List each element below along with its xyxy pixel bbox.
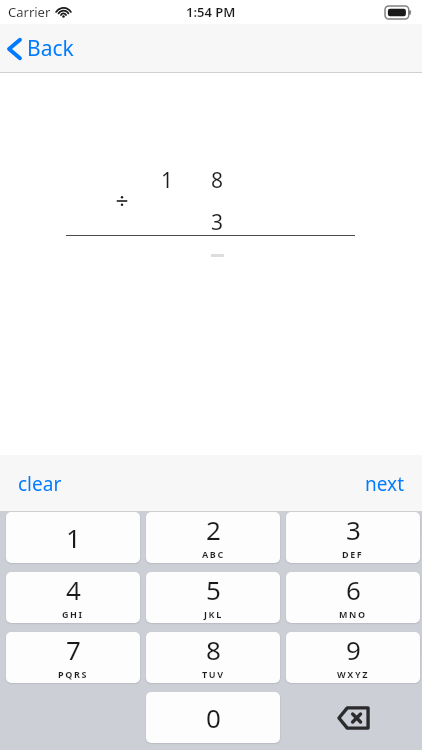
staticText: 8 xyxy=(206,632,221,667)
staticText: WXYZ xyxy=(337,668,369,680)
staticText: 8 xyxy=(207,166,227,195)
staticText: 0 xyxy=(206,700,221,735)
staticText: 6 xyxy=(346,572,361,607)
staticText: MNO xyxy=(339,608,367,620)
button[interactable]: 0 xyxy=(146,692,280,743)
staticText: DEF xyxy=(342,548,364,560)
staticText: Carrier xyxy=(8,3,51,21)
button[interactable]: 4 xyxy=(6,572,140,623)
button[interactable]: Back xyxy=(0,28,86,69)
button[interactable]: 7 xyxy=(6,632,140,683)
button[interactable]: Backspace xyxy=(286,692,420,743)
staticText: JKL xyxy=(204,608,223,620)
staticText: next xyxy=(365,471,404,497)
button[interactable]: 9 xyxy=(286,632,420,683)
staticText: 1 xyxy=(157,166,177,195)
button[interactable]: clear xyxy=(0,463,78,505)
staticText: 2 xyxy=(206,512,221,547)
staticText: PQRS xyxy=(58,668,88,680)
staticText: 4 xyxy=(66,572,81,607)
staticText: 1 xyxy=(66,520,81,555)
button[interactable]: 1 xyxy=(6,512,140,563)
staticText: 3 xyxy=(207,208,227,237)
staticText: Back xyxy=(27,34,74,63)
staticText: clear xyxy=(18,471,62,497)
button[interactable]: next xyxy=(349,463,422,505)
staticText: ABC xyxy=(202,548,225,560)
staticText: 9 xyxy=(346,632,361,667)
staticText: GHI xyxy=(62,608,84,620)
staticText: 1:54 PM xyxy=(186,3,236,21)
button[interactable]: 8 xyxy=(146,632,280,683)
staticText: 7 xyxy=(66,632,81,667)
button[interactable]: 2 xyxy=(146,512,280,563)
button[interactable]: 6 xyxy=(286,572,420,623)
staticText: TUV xyxy=(202,668,225,680)
staticText: 5 xyxy=(206,572,221,607)
staticText: 3 xyxy=(346,512,361,547)
button[interactable]: 5 xyxy=(146,572,280,623)
button[interactable]: 3 xyxy=(286,512,420,563)
